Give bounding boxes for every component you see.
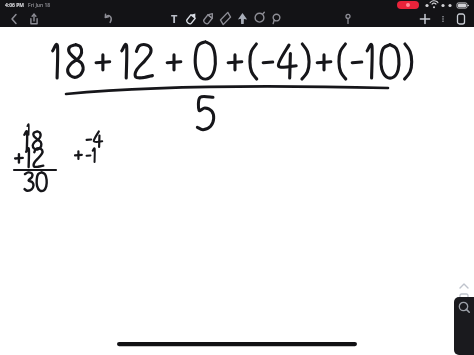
button[interactable]: Zoom bbox=[454, 297, 474, 355]
staticText: Fri Jun 18 bbox=[28, 2, 51, 9]
button[interactable]: Add page bbox=[417, 11, 433, 27]
button[interactable]: Lasso bbox=[251, 10, 268, 27]
button[interactable]: Text tool bbox=[166, 10, 183, 27]
button[interactable]: Share bbox=[26, 11, 42, 27]
button[interactable]: Undo bbox=[100, 10, 118, 27]
button[interactable]: More options bbox=[436, 12, 450, 26]
button[interactable]: Pages bbox=[453, 11, 469, 27]
button[interactable]: Marker bbox=[200, 10, 217, 27]
staticText: 4:06 PM bbox=[5, 2, 24, 9]
staticText: T bbox=[171, 11, 178, 26]
button[interactable]: Pen bbox=[183, 10, 200, 27]
button[interactable]: Shapes bbox=[340, 11, 356, 27]
button[interactable]: Highlighter bbox=[217, 10, 234, 27]
button[interactable]: Back bbox=[6, 11, 22, 27]
button[interactable]: Select bbox=[268, 10, 285, 27]
button[interactable]: Eraser bbox=[234, 10, 251, 27]
